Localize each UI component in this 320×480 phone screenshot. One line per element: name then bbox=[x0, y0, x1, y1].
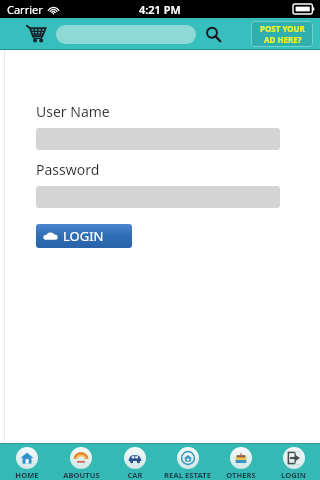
button[interactable]: ABOUTUS bbox=[54, 444, 108, 480]
staticText: LOGIN bbox=[281, 470, 306, 480]
button[interactable]: LOGIN bbox=[267, 444, 320, 480]
button[interactable]: LOGIN bbox=[36, 224, 132, 248]
button[interactable]: Cart bbox=[24, 23, 48, 45]
button[interactable] bbox=[56, 25, 196, 44]
staticText: Carrier bbox=[7, 2, 43, 17]
staticText: REAL ESTATE bbox=[164, 470, 211, 480]
staticText: ABOUTUS bbox=[63, 470, 100, 480]
button[interactable]: REAL ESTATE bbox=[161, 444, 214, 480]
button[interactable]: Search bbox=[202, 23, 224, 45]
staticText: LOGIN bbox=[63, 227, 104, 245]
staticText: AD HERE? bbox=[264, 34, 302, 45]
button[interactable]: HOME bbox=[0, 444, 54, 480]
staticText: HOME bbox=[15, 470, 39, 480]
button[interactable]: POST YOUR bbox=[251, 21, 313, 47]
staticText: Password bbox=[36, 160, 100, 179]
button[interactable]: OTHERS bbox=[214, 444, 267, 480]
staticText: OTHERS bbox=[226, 470, 256, 480]
staticText: 4:21 PM bbox=[139, 2, 181, 17]
staticText: POST YOUR bbox=[260, 23, 305, 34]
staticText: User Name bbox=[36, 102, 110, 121]
button[interactable]: CAR bbox=[108, 444, 161, 480]
staticText: CAR bbox=[127, 470, 143, 480]
